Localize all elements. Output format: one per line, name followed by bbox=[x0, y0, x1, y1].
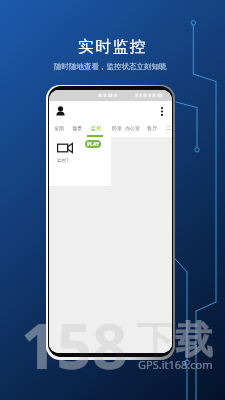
staticText: 158 bbox=[21, 303, 128, 387]
staticText: 场景 bbox=[72, 125, 82, 131]
staticText: PLAY bbox=[87, 141, 100, 148]
button[interactable]: 监控 bbox=[90, 122, 101, 134]
staticText: 随时随地查看，监控状态立刻知晓 bbox=[54, 62, 167, 71]
staticText: GPS.it168.com bbox=[138, 357, 213, 372]
staticText: 卧室 bbox=[112, 125, 122, 131]
button[interactable]: 全部 bbox=[53, 122, 64, 134]
staticText: 二 bbox=[166, 125, 171, 131]
staticText: 监控 bbox=[91, 125, 101, 131]
button[interactable]: More options bbox=[155, 104, 169, 118]
button[interactable]: 监控1 bbox=[49, 137, 111, 186]
button[interactable]: 场景 bbox=[71, 122, 82, 134]
staticText: 下载 bbox=[137, 316, 213, 364]
button[interactable]: 办公室 bbox=[125, 122, 140, 134]
staticText: 客厅 bbox=[147, 125, 157, 131]
staticText: 实时监控 bbox=[78, 37, 147, 57]
staticText: 下载 bbox=[137, 316, 213, 364]
button[interactable]: 客厅 bbox=[146, 122, 157, 134]
staticText: 办公室 bbox=[125, 125, 140, 131]
staticText: 监控1 bbox=[57, 157, 69, 163]
button[interactable]: Play bbox=[85, 140, 101, 148]
button[interactable]: 卧室 bbox=[111, 122, 122, 134]
staticText: 158 bbox=[21, 303, 128, 387]
button[interactable]: Account bbox=[53, 104, 67, 118]
button[interactable]: 二 bbox=[165, 122, 171, 134]
staticText: 全部 bbox=[54, 125, 64, 131]
